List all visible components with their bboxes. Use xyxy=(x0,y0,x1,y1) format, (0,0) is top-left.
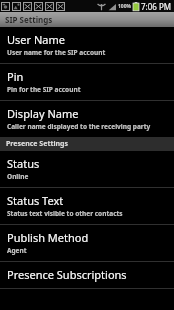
staticText: 7:06 PM xyxy=(141,1,172,12)
button[interactable]: User Name xyxy=(0,27,174,63)
staticText: Status Text xyxy=(7,193,64,208)
staticText: Presence Subscriptions xyxy=(7,267,127,282)
staticText: Agent xyxy=(7,246,27,255)
staticText: SIP Settings xyxy=(5,14,53,25)
button[interactable]: Publish Method xyxy=(0,225,174,261)
staticText: 100% xyxy=(118,3,132,10)
staticText: Pin xyxy=(7,69,24,84)
staticText: Caller name displayed to the receiving p… xyxy=(7,122,151,131)
staticText: Pin for the SIP account xyxy=(7,85,81,94)
staticText: Publish Method xyxy=(7,230,89,245)
staticText: Status text visible to other contacts xyxy=(7,209,123,218)
button[interactable]: Status xyxy=(0,151,174,187)
staticText: User name for the SIP account xyxy=(7,48,106,57)
staticText: Presence Settings xyxy=(6,139,69,149)
button[interactable]: Display Name xyxy=(0,101,174,137)
button[interactable]: Pin xyxy=(0,64,174,100)
staticText: User Name xyxy=(7,32,65,47)
staticText: Status xyxy=(7,156,40,171)
staticText: Display Name xyxy=(7,106,79,121)
button[interactable]: Presence Subscriptions xyxy=(0,262,174,288)
button[interactable]: Status Text xyxy=(0,188,174,224)
staticText: Online xyxy=(7,172,29,181)
